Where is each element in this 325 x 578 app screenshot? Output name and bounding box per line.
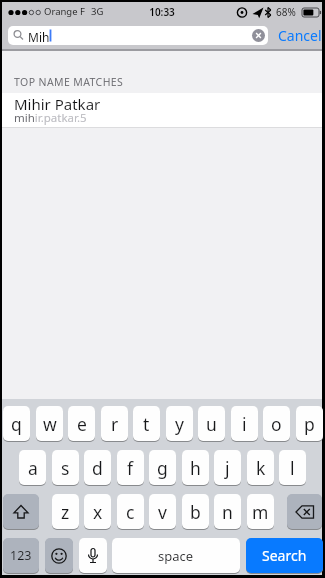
staticText: d (92, 456, 103, 480)
staticText: r (111, 412, 119, 436)
button[interactable]: o (263, 406, 290, 441)
staticText: v (158, 500, 167, 524)
staticText: m (252, 500, 269, 524)
staticText: n (222, 500, 233, 524)
button[interactable]: x (84, 494, 111, 529)
button[interactable]: z (52, 494, 79, 529)
button[interactable]: space (112, 538, 240, 573)
staticText: f (127, 456, 134, 480)
staticText: i (242, 412, 247, 436)
staticText: Search (262, 546, 307, 565)
button[interactable]: t (133, 406, 160, 441)
button[interactable]: i (231, 406, 258, 441)
staticText: e (77, 412, 87, 436)
staticText: Cancel (278, 26, 322, 45)
button[interactable]: y (166, 406, 193, 441)
button[interactable]: v (149, 494, 176, 529)
staticText: o (271, 412, 282, 436)
button[interactable]: f (117, 450, 144, 485)
button[interactable]: k (247, 450, 274, 485)
staticText: 10:33 (2, 5, 322, 19)
button[interactable]: d (84, 450, 111, 485)
staticText: k (256, 456, 266, 480)
button[interactable]: j (214, 450, 241, 485)
button[interactable]: Cancel (278, 21, 324, 49)
button[interactable]: e (68, 406, 95, 441)
button[interactable]: b (182, 494, 209, 529)
staticText: Orange F (44, 5, 85, 18)
button[interactable]: l (279, 450, 306, 485)
button[interactable]: n (214, 494, 241, 529)
button[interactable]: s (52, 450, 79, 485)
staticText: 68% (276, 5, 296, 19)
staticText: x (93, 500, 103, 524)
staticText: c (126, 500, 135, 524)
button[interactable] (45, 538, 73, 573)
button[interactable] (79, 538, 107, 573)
button[interactable]: w (36, 406, 63, 441)
button[interactable]: Search (246, 538, 323, 573)
staticText: mihir.patkar.5 (14, 110, 87, 126)
staticText: b (190, 500, 201, 524)
staticText: y (175, 412, 184, 436)
staticText: l (290, 456, 295, 480)
button[interactable]: 123 (3, 538, 39, 573)
staticText: t (143, 412, 150, 436)
staticText: j (225, 456, 230, 480)
button[interactable]: p (296, 406, 323, 441)
staticText: w (43, 412, 57, 436)
button[interactable]: g (149, 450, 176, 485)
staticText: p (304, 412, 315, 436)
button[interactable]: c (117, 494, 144, 529)
staticText: 123 (10, 547, 32, 564)
staticText: u (206, 412, 217, 436)
staticText: g (157, 456, 168, 480)
button[interactable]: Mihir Patkar (2, 93, 322, 127)
staticText: Mihir Patkar (14, 94, 101, 114)
staticText: z (61, 500, 70, 524)
staticText: a (28, 456, 38, 480)
button[interactable]: q (3, 406, 30, 441)
button[interactable] (3, 494, 39, 529)
staticText: s (61, 456, 70, 480)
staticText: 3G (91, 5, 104, 18)
button[interactable]: u (198, 406, 225, 441)
staticText: TOP NAME MATCHES (14, 75, 124, 89)
button[interactable]: Mih (8, 26, 268, 45)
staticText: q (11, 412, 22, 436)
button[interactable]: a (19, 450, 46, 485)
staticText: Mih (28, 29, 50, 45)
button[interactable] (287, 494, 322, 529)
staticText: space (158, 547, 194, 565)
button[interactable]: r (101, 406, 128, 441)
staticText: h (190, 456, 201, 480)
button[interactable]: m (247, 494, 274, 529)
button[interactable]: h (182, 450, 209, 485)
